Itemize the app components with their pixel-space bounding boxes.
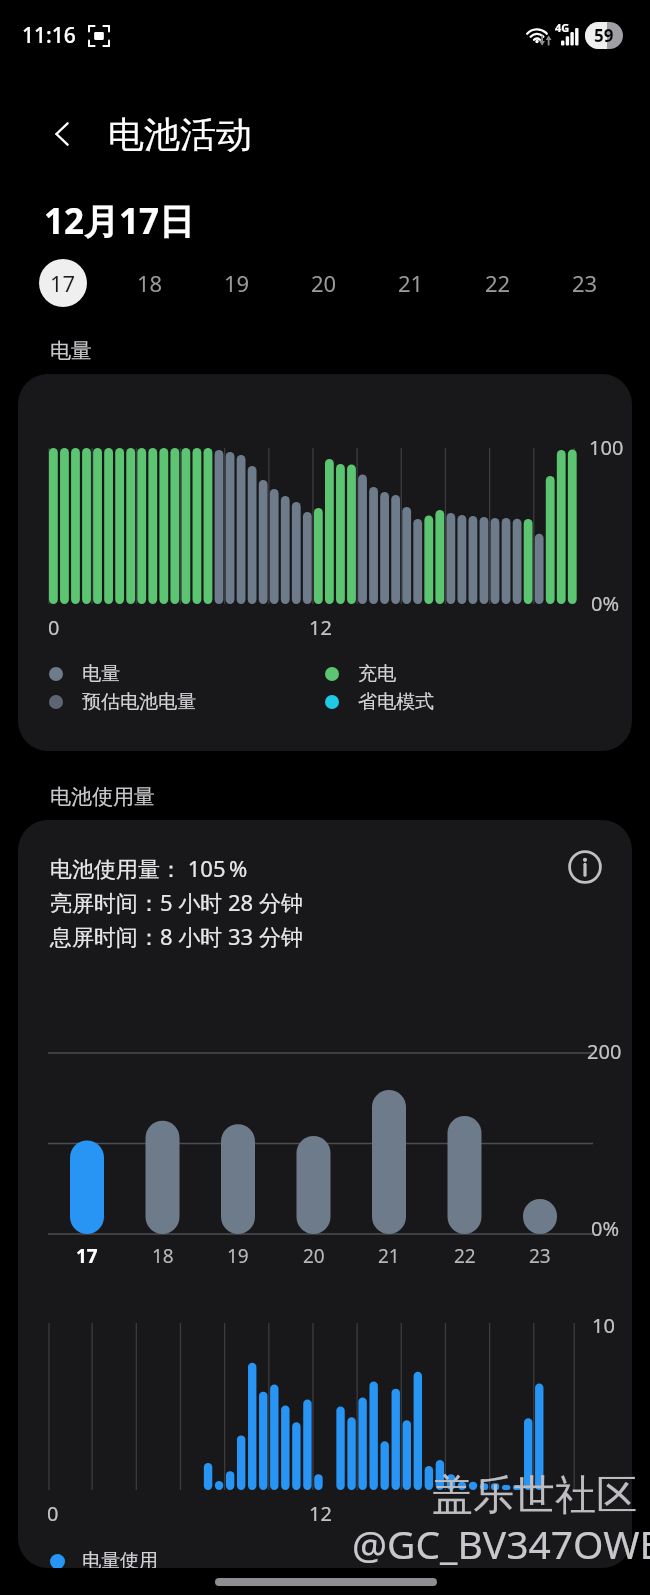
staticText: 亮屏时间：5 小时 28 分钟 — [50, 887, 303, 917]
staticText: 电量 — [50, 338, 92, 364]
button[interactable]: Back — [38, 110, 86, 158]
button[interactable]: 18 — [126, 259, 174, 307]
staticText: 100 — [589, 434, 624, 461]
staticText: 11:16 — [22, 21, 76, 50]
button[interactable]: 19 — [213, 259, 261, 307]
staticText: 19 — [227, 1243, 249, 1269]
staticText: 电池使用量 — [50, 784, 155, 810]
staticText: 200 — [587, 1038, 622, 1065]
staticText: 0% — [591, 590, 620, 617]
staticText: @GC_BV347OWE — [352, 1517, 650, 1570]
button[interactable]: 20 — [300, 259, 348, 307]
staticText: 电量使用 — [82, 1549, 158, 1568]
staticText: 4G — [555, 20, 570, 35]
staticText: 20 — [311, 268, 337, 298]
staticText: 息屏时间：8 小时 33 分钟 — [50, 921, 303, 951]
staticText: 18 — [152, 1243, 174, 1269]
staticText: 20 — [303, 1243, 325, 1269]
staticText: 12 — [309, 1500, 332, 1527]
staticText: 充电 — [358, 662, 396, 686]
button[interactable]: 22 — [474, 259, 522, 307]
staticText: 12月17日 — [44, 197, 195, 245]
staticText: 电池活动 — [108, 112, 252, 157]
staticText: 21 — [378, 1243, 400, 1269]
staticText: 电池使用量： 105 % — [50, 853, 248, 883]
staticText: 12 — [309, 614, 332, 641]
button[interactable]: 23 — [561, 259, 609, 307]
button[interactable]: Information — [563, 845, 607, 889]
staticText: 22 — [485, 268, 511, 298]
staticText: 59 — [594, 24, 614, 47]
staticText: 17 — [50, 268, 76, 298]
staticText: 0 — [47, 1500, 59, 1527]
staticText: 23 — [529, 1243, 551, 1269]
staticText: 0 — [48, 614, 60, 641]
staticText: 23 — [572, 268, 598, 298]
staticText: 省电模式 — [358, 690, 434, 714]
staticText: 17 — [76, 1243, 98, 1269]
button[interactable]: 17 — [39, 259, 87, 307]
staticText: 预估电池电量 — [82, 690, 196, 714]
staticText: 10 — [592, 1312, 615, 1339]
staticText: 19 — [224, 268, 250, 298]
button[interactable]: 21 — [387, 259, 435, 307]
staticText: 电量 — [82, 662, 120, 686]
staticText: 21 — [398, 268, 424, 298]
staticText: 18 — [137, 268, 163, 298]
staticText: 22 — [454, 1243, 476, 1269]
staticText: 盖乐世社区 — [432, 1470, 637, 1522]
staticText: 0% — [591, 1215, 620, 1242]
